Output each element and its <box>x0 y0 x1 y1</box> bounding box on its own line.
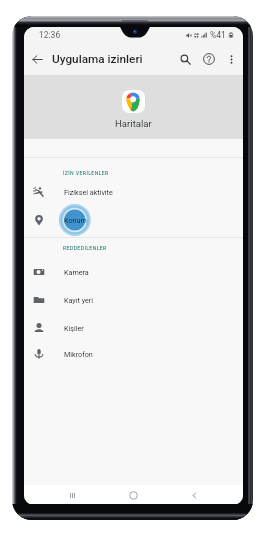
button[interactable]: Fiziksel aktivite <box>24 179 243 205</box>
button[interactable]: Help <box>197 47 221 71</box>
button[interactable]: More options <box>221 49 241 69</box>
button[interactable]: Mikrofon <box>24 341 243 367</box>
button[interactable]: Kişiler <box>24 315 243 341</box>
button[interactable]: Home <box>123 485 143 505</box>
staticText: İZİN VERİLENLER <box>63 170 109 176</box>
button[interactable]: Kamera <box>24 259 243 285</box>
staticText: Kayıt yeri <box>64 296 94 304</box>
staticText: Konum <box>64 216 87 224</box>
staticText: Fiziksel aktivite <box>64 188 113 196</box>
staticText: Haritalar <box>115 118 152 129</box>
staticText: Mikrofon <box>64 350 93 358</box>
staticText: 12:36 <box>39 30 61 40</box>
staticText: Kişiler <box>64 324 84 332</box>
staticText: Kamera <box>64 268 89 276</box>
button[interactable]: Kayıt yeri <box>24 287 243 313</box>
staticText: %41 <box>210 30 226 40</box>
button[interactable]: Search <box>173 47 197 71</box>
button[interactable]: Konum <box>24 207 243 233</box>
staticText: REDDEDİLENLER <box>63 245 107 251</box>
button[interactable]: Back <box>184 485 204 505</box>
button[interactable]: Recents <box>62 485 82 505</box>
staticText: Uygulama izinleri <box>52 52 143 66</box>
button[interactable]: Back <box>24 46 50 72</box>
